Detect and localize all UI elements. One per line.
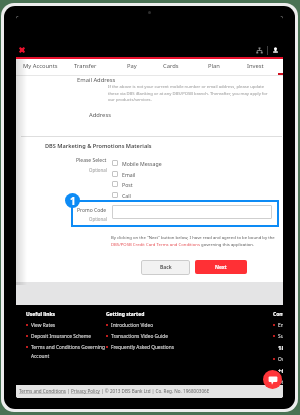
button[interactable]: Introduction Video bbox=[106, 322, 154, 329]
staticText: Terms and Conditions | Privacy Policy | … bbox=[19, 388, 210, 394]
staticText: Back bbox=[160, 264, 172, 271]
staticText: Getting started bbox=[106, 311, 145, 318]
button[interactable]: Overseas bbox=[273, 356, 283, 363]
button[interactable]: My Accounts bbox=[23, 62, 58, 70]
button[interactable]: Frequently Asked Questions bbox=[106, 344, 175, 351]
staticText: Transactions Video Guide bbox=[111, 333, 168, 340]
button[interactable]: 1800 111 1111 bbox=[273, 344, 283, 352]
staticText: Email bbox=[122, 171, 136, 178]
staticText: Optional bbox=[89, 167, 107, 173]
button[interactable]: Invest bbox=[247, 62, 264, 70]
staticText: If the above is not your current mobile … bbox=[108, 84, 274, 102]
staticText: Invest bbox=[247, 62, 264, 70]
button[interactable]: Deposit Insurance Scheme bbox=[26, 333, 92, 340]
button[interactable]: Profile bbox=[272, 47, 279, 54]
staticText: Promo Code bbox=[77, 207, 107, 214]
button[interactable]: Chat bbox=[263, 370, 282, 389]
staticText: Please Select bbox=[76, 157, 107, 164]
staticText: My Accounts bbox=[23, 62, 58, 70]
button[interactable]: Mobile Message bbox=[112, 158, 162, 168]
staticText: 1800 111 1111 bbox=[278, 344, 283, 352]
staticText: Deposit Insurance Scheme bbox=[31, 333, 92, 340]
staticText: Overseas bbox=[278, 356, 283, 363]
staticText: Transfer bbox=[74, 62, 97, 70]
staticText: Other numbers bbox=[278, 379, 283, 386]
button[interactable]: Plan bbox=[208, 62, 220, 70]
staticText: Next bbox=[215, 264, 227, 271]
staticText: Submit feedback bbox=[278, 333, 283, 340]
button[interactable]: Back bbox=[141, 260, 190, 275]
staticText: Address bbox=[89, 111, 111, 119]
staticText: +65 6327 2265 bbox=[278, 367, 283, 375]
staticText: By clicking on the "Next" button below, … bbox=[111, 234, 283, 248]
staticText: Call bbox=[122, 192, 131, 199]
staticText: Mobile Message bbox=[122, 160, 162, 167]
staticText: Introduction Video bbox=[111, 322, 154, 329]
button[interactable]: Transactions Video Guide bbox=[106, 333, 168, 340]
staticText: DBS Marketing & Promotions Materials bbox=[45, 142, 152, 150]
staticText: View Rates bbox=[31, 322, 56, 329]
button[interactable]: Transfer bbox=[74, 62, 97, 70]
staticText: Email Address bbox=[77, 76, 116, 84]
staticText: Optional bbox=[89, 216, 107, 222]
button[interactable]: DBS logo bbox=[19, 47, 25, 53]
staticText: Useful links bbox=[26, 311, 56, 318]
button[interactable]: Pay bbox=[127, 62, 137, 70]
button[interactable]: Cards bbox=[163, 62, 179, 70]
staticText: Enquiry bbox=[278, 322, 283, 329]
staticText: Pay bbox=[127, 62, 137, 70]
button[interactable]: Call bbox=[112, 190, 131, 200]
button[interactable]: Other numbers bbox=[273, 379, 283, 386]
button[interactable] bbox=[112, 205, 272, 219]
staticText: Plan bbox=[208, 62, 220, 70]
button[interactable]: Email bbox=[112, 169, 136, 179]
staticText: Frequently Asked Questions bbox=[111, 344, 175, 351]
button[interactable]: View Rates bbox=[26, 322, 56, 329]
button[interactable]: Terms and Conditions Governing Account bbox=[26, 344, 105, 359]
button[interactable]: Submit feedback bbox=[273, 333, 283, 340]
button[interactable]: Next bbox=[195, 260, 247, 274]
button[interactable]: Post bbox=[112, 179, 133, 189]
staticText: Terms and Conditions Governing Account bbox=[31, 344, 105, 359]
staticText: Cards bbox=[163, 62, 179, 70]
button[interactable]: Enquiry bbox=[273, 322, 283, 329]
staticText: Post bbox=[122, 181, 133, 188]
button[interactable]: +65 6327 2265 bbox=[273, 367, 283, 375]
button[interactable]: Org chart bbox=[256, 47, 263, 54]
staticText: 1 bbox=[70, 194, 76, 208]
staticText: Contact us bbox=[273, 311, 283, 318]
